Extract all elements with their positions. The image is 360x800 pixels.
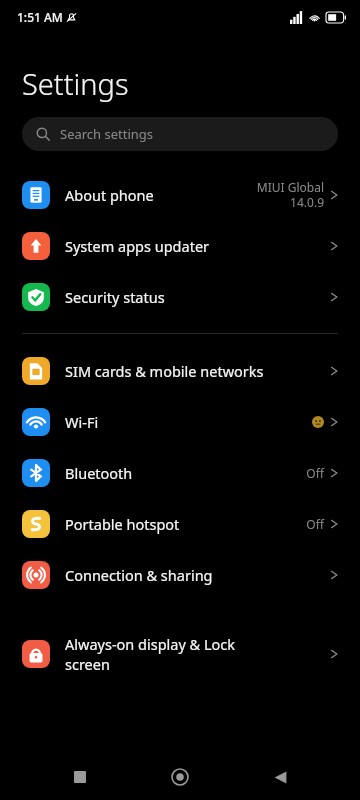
staticText: Portable hotspot: [65, 514, 306, 534]
button[interactable]: Home: [160, 757, 200, 797]
staticText: Wi-Fi: [65, 412, 312, 432]
button[interactable]: System apps updater: [0, 220, 360, 271]
staticText: SIM cards & mobile networks: [65, 361, 330, 381]
staticText: 1:51 AM: [17, 9, 63, 25]
staticText: Off: [306, 516, 324, 532]
button[interactable]: Portable hotspot: [0, 498, 360, 549]
staticText: Off: [306, 465, 324, 481]
button[interactable]: About phone: [0, 169, 360, 220]
staticText: About phone: [65, 185, 256, 205]
staticText: Security status: [65, 287, 330, 307]
staticText: Settings: [22, 64, 129, 103]
button[interactable]: SIM cards & mobile networks: [0, 345, 360, 396]
button[interactable]: Always-on display & Lock screen: [0, 628, 360, 680]
button[interactable]: Bluetooth: [0, 447, 360, 498]
button[interactable]: Wi-Fi: [0, 396, 360, 447]
button[interactable]: Security status: [0, 271, 360, 322]
staticText: Connection & sharing: [65, 565, 330, 585]
staticText: Bluetooth: [65, 463, 306, 483]
button[interactable]: Search settings: [22, 117, 338, 151]
button[interactable]: Recent apps: [60, 757, 100, 797]
staticText: System apps updater: [65, 236, 330, 256]
button[interactable]: Connection & sharing: [0, 549, 360, 600]
staticText: Search settings: [60, 125, 154, 143]
staticText: MIUI Global 14.0.9: [256, 179, 324, 210]
staticText: Always-on display & Lock screen: [65, 634, 330, 674]
button[interactable]: Back: [260, 757, 300, 797]
